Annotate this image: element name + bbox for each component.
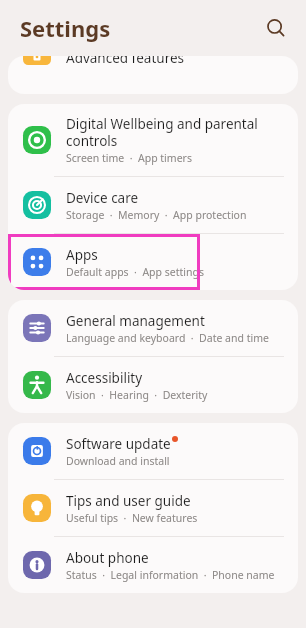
button[interactable]: Device care (8, 177, 298, 233)
button[interactable]: Accessibility (8, 357, 298, 413)
staticText: Software update (66, 435, 171, 453)
staticText: Screen time · App timers (66, 151, 192, 165)
staticText: Device care (66, 189, 139, 207)
button[interactable]: Tips and user guide (8, 480, 298, 536)
staticText: Vision · Hearing · Dexterity (66, 388, 208, 402)
button[interactable]: Software update (8, 423, 298, 479)
staticText: Tips and user guide (66, 492, 191, 510)
staticText: Apps (66, 246, 98, 264)
button[interactable]: About phone (8, 537, 298, 593)
staticText: Storage · Memory · App protection (66, 208, 247, 222)
button[interactable]: Apps (8, 234, 298, 290)
staticText: General management (66, 312, 205, 330)
staticText: About phone (66, 549, 149, 567)
button[interactable]: Search (256, 8, 296, 48)
staticText: Accessibility (66, 369, 143, 387)
staticText: Settings (20, 13, 111, 43)
button[interactable]: Digital Wellbeing and parental controls (8, 104, 298, 176)
button[interactable]: General management (8, 300, 298, 356)
staticText: Status · Legal information · Phone name (66, 568, 275, 582)
staticText: Language and keyboard · Date and time (66, 331, 269, 345)
staticText: Advanced features (66, 56, 185, 65)
staticText: Download and install (66, 454, 170, 468)
staticText: Useful tips · New features (66, 511, 198, 525)
button[interactable]: Advanced features (8, 56, 298, 76)
staticText: Default apps · App settings (66, 265, 204, 279)
staticText: Digital Wellbeing and parental controls (66, 115, 258, 150)
